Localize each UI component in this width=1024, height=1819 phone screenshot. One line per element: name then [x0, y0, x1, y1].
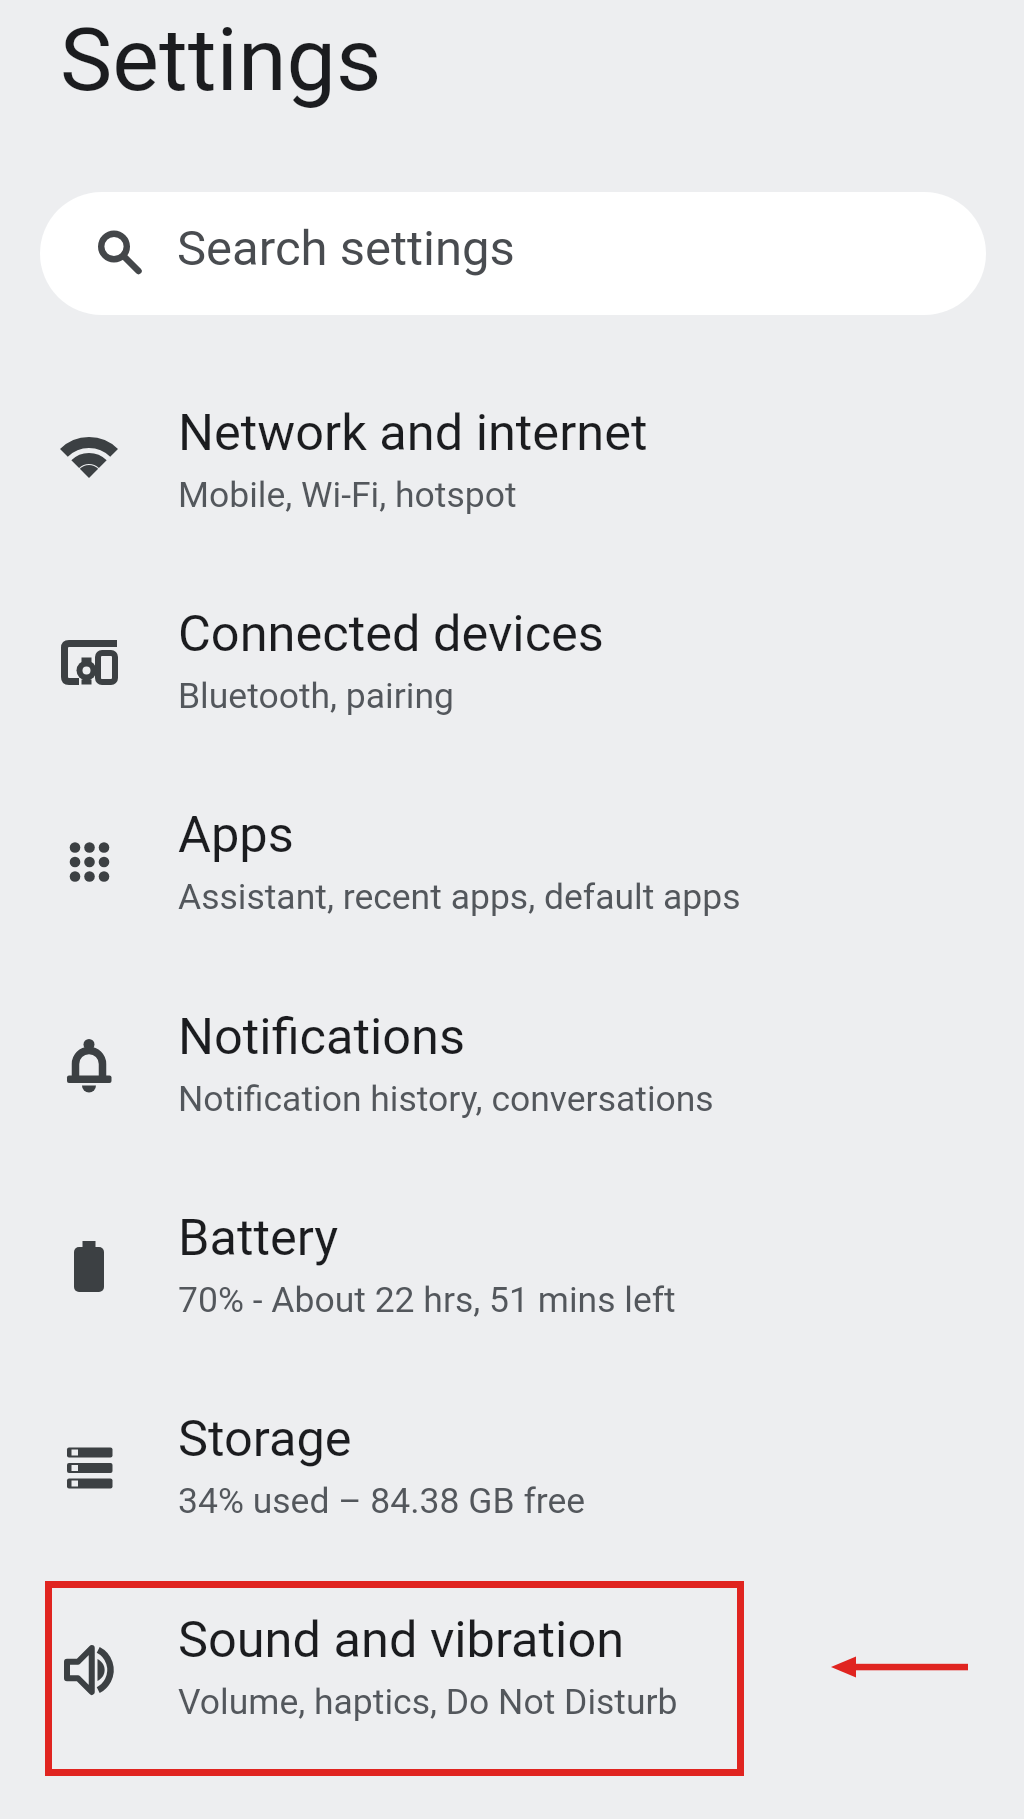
staticText: Connected devices [178, 604, 604, 663]
staticText: Notifications [178, 1007, 466, 1066]
staticText: Sound and vibration [178, 1610, 625, 1669]
button[interactable]: Apps [0, 772, 1024, 973]
staticText: Battery [178, 1208, 339, 1267]
button[interactable]: Sound and vibration [0, 1577, 1024, 1778]
button[interactable]: Notifications [0, 974, 1024, 1175]
staticText: 34% used – 84.38 GB free [178, 1480, 586, 1522]
staticText: 70% - About 22 hrs, 51 mins left [178, 1279, 676, 1321]
staticText: Apps [178, 805, 294, 864]
button[interactable]: Connected devices [0, 571, 1024, 772]
staticText: Bluetooth, pairing [178, 675, 454, 717]
staticText: Volume, haptics, Do Not Disturb [178, 1681, 678, 1723]
staticText: Notification history, conversations [178, 1078, 714, 1120]
button[interactable]: Storage [0, 1376, 1024, 1577]
staticText: Settings [60, 8, 382, 111]
staticText: Search settings [177, 220, 515, 277]
staticText: Mobile, Wi-Fi, hotspot [178, 474, 517, 516]
staticText: Storage [178, 1409, 352, 1468]
button[interactable]: Battery [0, 1175, 1024, 1376]
staticText: Network and internet [178, 403, 648, 462]
button[interactable]: Network and internet [0, 370, 1024, 571]
button[interactable]: Search settings [40, 192, 986, 315]
staticText: Assistant, recent apps, default apps [178, 876, 741, 918]
